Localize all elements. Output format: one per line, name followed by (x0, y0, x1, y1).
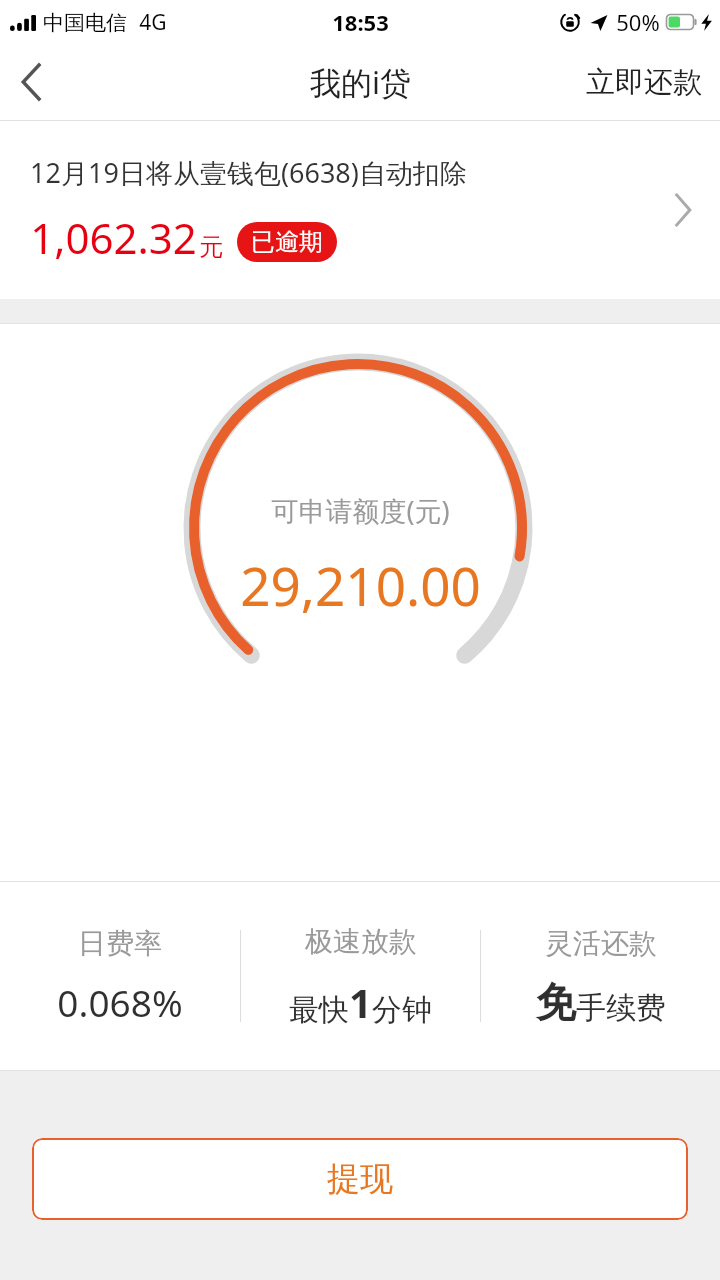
staticText: 0.068% (57, 977, 183, 1027)
staticText: 最快 (289, 991, 349, 1029)
staticText: 1 (349, 975, 372, 1029)
staticText: 极速放款 (305, 924, 417, 959)
staticText: 提现 (327, 1158, 393, 1200)
staticText: 可申请额度(元) (271, 492, 450, 529)
button[interactable]: 立即还款 (568, 44, 720, 120)
staticText: 1,062.32 (30, 209, 197, 266)
staticText: 4G (139, 8, 167, 37)
staticText: 12月19日将从壹钱包(6638)自动扣除 (30, 154, 467, 191)
staticText: 29,210.00 (240, 549, 481, 621)
staticText: 我的i贷 (310, 61, 411, 103)
button[interactable]: 提现 (32, 1138, 688, 1220)
staticText: 中国电信 (43, 10, 127, 36)
button[interactable]: Back (0, 50, 64, 114)
button[interactable]: 12月19日将从壹钱包(6638)自动扣除 (0, 121, 720, 299)
staticText: 已逾期 (251, 227, 323, 257)
staticText: 50% (616, 7, 660, 37)
staticText: 日费率 (78, 926, 162, 961)
staticText: 免 (536, 977, 576, 1027)
staticText: 手续费 (576, 989, 666, 1027)
staticText: 分钟 (372, 991, 432, 1029)
staticText: 立即还款 (586, 64, 702, 101)
staticText: 元 (199, 232, 223, 262)
staticText: 灵活还款 (545, 926, 657, 961)
staticText: 18:53 (332, 7, 389, 37)
